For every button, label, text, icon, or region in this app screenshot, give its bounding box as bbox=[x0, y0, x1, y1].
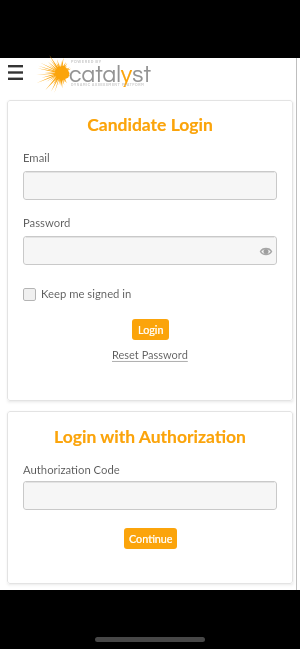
staticText: Authorization Code bbox=[23, 463, 120, 477]
button[interactable]: Continue bbox=[124, 528, 177, 549]
staticText: Email bbox=[23, 151, 50, 165]
button[interactable]: Keep me signed in bbox=[23, 287, 132, 301]
button[interactable]: Show password bbox=[259, 244, 273, 258]
button[interactable]: Reset Password bbox=[112, 348, 188, 361]
staticText: Password bbox=[23, 216, 71, 230]
staticText: D Y N A M I C A S S E S S M E N T P L A … bbox=[71, 83, 144, 86]
staticText: Candidate Login bbox=[7, 114, 293, 135]
button[interactable]: Login bbox=[132, 319, 169, 340]
button[interactable] bbox=[23, 171, 277, 200]
staticText: Keep me signed in bbox=[41, 287, 132, 301]
staticText: catalyst bbox=[69, 63, 151, 87]
button[interactable]: Show password bbox=[23, 236, 277, 265]
button[interactable]: Menu bbox=[1, 58, 30, 87]
staticText: Continue bbox=[129, 532, 173, 545]
staticText: Login bbox=[138, 323, 164, 336]
staticText: Login with Authorization bbox=[7, 426, 293, 447]
staticText: P O W E R E D B Y bbox=[71, 60, 102, 64]
button[interactable] bbox=[23, 481, 277, 510]
